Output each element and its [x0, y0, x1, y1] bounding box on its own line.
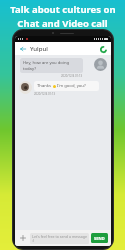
button[interactable]: Your avatar: [19, 81, 32, 94]
staticText: Hey, how are you doing today?: [23, 60, 80, 71]
staticText: I'm good, you?: [57, 83, 86, 89]
staticText: Yulpul: [30, 45, 48, 53]
button[interactable]: Let's feel free to send a message :): [30, 233, 89, 244]
button[interactable]: SEND: [91, 233, 108, 243]
button[interactable]: Call: [98, 44, 108, 54]
staticText: SEND: [94, 236, 105, 241]
button[interactable]: Hey, how are you doing today?: [20, 58, 92, 78]
staticText: Chat and Video call: [17, 17, 108, 30]
staticText: 2020/12/4 01:13: [61, 74, 83, 78]
button[interactable]: Add attachment: [18, 233, 28, 243]
button[interactable]: Back: [18, 44, 27, 53]
button[interactable]: Thanks: [34, 81, 105, 96]
staticText: Let's feel free to send a message :): [32, 234, 87, 243]
button[interactable]: Contact avatar: [94, 58, 107, 71]
staticText: Talk about cultures on: [10, 3, 116, 16]
staticText: 2020/12/4 01:13: [34, 92, 56, 96]
staticText: Thanks: [37, 83, 52, 89]
